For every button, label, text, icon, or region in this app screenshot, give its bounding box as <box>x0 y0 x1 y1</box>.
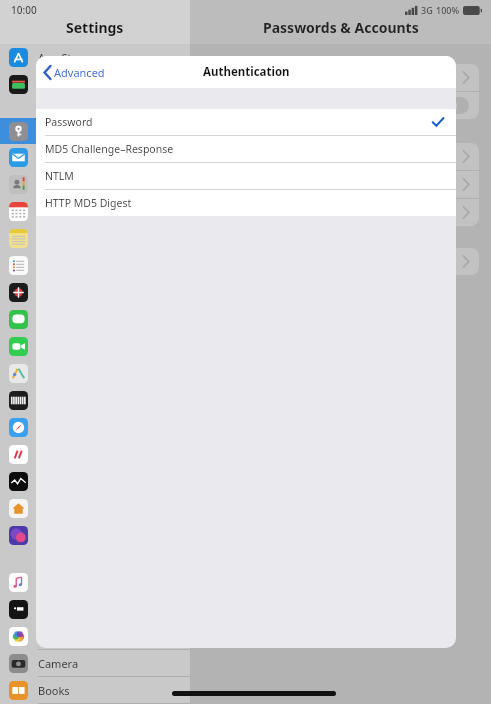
staticText: Mail <box>38 150 60 165</box>
staticText: Books <box>38 683 70 698</box>
button[interactable]: Music2 <box>0 387 190 413</box>
button[interactable]: HTTP MD5 Digest <box>36 190 456 216</box>
staticText: 10:00 <box>11 3 37 17</box>
button[interactable] <box>202 199 479 226</box>
staticText: Contacts <box>38 177 84 192</box>
button[interactable] <box>202 143 479 170</box>
staticText: 100% <box>436 4 460 16</box>
staticText: NTLM <box>45 169 74 183</box>
button[interactable]: Stocks <box>0 468 190 494</box>
staticText: Calendar <box>38 204 85 219</box>
staticText: Passwords & Accounts <box>38 124 154 139</box>
button[interactable]: Mail <box>0 144 190 170</box>
button[interactable] <box>202 248 479 275</box>
button[interactable] <box>202 171 479 198</box>
staticText: 3G <box>421 4 433 16</box>
button[interactable]: Home <box>0 495 190 521</box>
staticText: Camera <box>38 656 79 671</box>
staticText: MD5 Challenge–Response <box>45 142 174 156</box>
button[interactable]: Calendar <box>0 198 190 224</box>
button[interactable]: Notes <box>0 225 190 251</box>
button[interactable]: FaceTime <box>0 333 190 359</box>
button[interactable]: Music <box>0 569 190 595</box>
button[interactable]: MD5 Challenge–Response <box>36 136 456 162</box>
button[interactable]: TV <box>0 596 190 622</box>
button[interactable]: Reminders <box>0 252 190 278</box>
staticText: App Store <box>38 50 89 65</box>
button[interactable]: Messages <box>0 306 190 332</box>
button[interactable]: Contacts <box>0 171 190 197</box>
staticText: Advanced <box>54 65 105 80</box>
button[interactable]: Password <box>36 109 456 135</box>
staticText: Password <box>45 115 93 129</box>
button[interactable]: Measure <box>0 360 190 386</box>
staticText: Settings <box>66 18 124 37</box>
button[interactable]: Advanced <box>36 56 113 88</box>
button[interactable]: News <box>0 441 190 467</box>
button[interactable]: Books <box>0 677 190 703</box>
button[interactable]: NTLM <box>36 163 456 189</box>
button[interactable]: Wallet <box>0 71 190 97</box>
button[interactable] <box>202 64 479 91</box>
button[interactable]: Safari <box>0 414 190 440</box>
button[interactable]: Photos <box>0 623 190 649</box>
staticText: Passwords & Accounts <box>263 18 419 37</box>
button[interactable]: Camera <box>0 650 190 676</box>
staticText: Authentication <box>203 64 290 80</box>
button[interactable]: App Store <box>0 44 190 70</box>
button[interactable]: Maps <box>0 279 190 305</box>
button[interactable]: Passwords & Accounts <box>0 118 190 144</box>
button[interactable] <box>202 92 479 119</box>
staticText: Wallet <box>38 77 71 92</box>
button[interactable]: Shortcuts <box>0 522 190 548</box>
staticText: HTTP MD5 Digest <box>45 196 132 210</box>
